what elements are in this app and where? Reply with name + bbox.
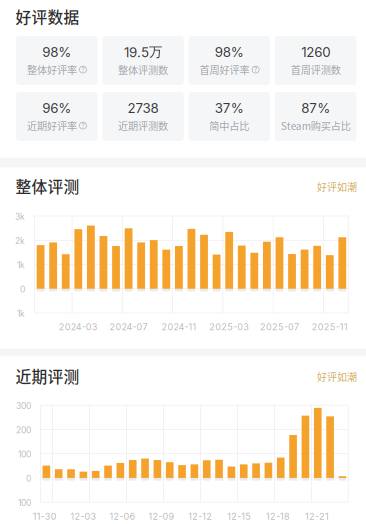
staticText: 2024-11: [161, 321, 196, 332]
button[interactable]: 37%: [189, 92, 270, 141]
staticText: 100: [18, 498, 31, 508]
staticText: 100: [18, 449, 31, 459]
staticText: 12-09: [148, 511, 174, 522]
staticText: 2025-11: [312, 321, 348, 332]
staticText: 1260: [301, 44, 330, 60]
staticText: 2025-07: [260, 321, 299, 332]
staticText: 12-15: [227, 511, 251, 522]
staticText: 首周评测数: [291, 62, 341, 77]
staticText: 2025-03: [209, 321, 249, 332]
staticText: 2024-07: [110, 321, 148, 332]
button[interactable]: 好评如潮: [317, 369, 357, 384]
staticText: 简中占比: [209, 118, 249, 133]
staticText: 1k: [17, 260, 25, 270]
staticText: 整体评测: [15, 174, 79, 197]
staticText: Steam购买占比: [281, 118, 351, 133]
button[interactable]: 96%: [16, 92, 97, 141]
staticText: 12-21: [305, 511, 329, 522]
staticText: ?: [81, 122, 84, 129]
staticText: 12-03: [71, 511, 97, 522]
button[interactable]: 1260: [275, 36, 356, 85]
staticText: 12-18: [266, 511, 290, 522]
staticText: 好评如潮: [317, 369, 357, 384]
staticText: 近期评测数: [118, 118, 168, 133]
staticText: 87%: [301, 100, 330, 116]
staticText: 2024-03: [59, 321, 98, 332]
button[interactable]: 19.5万: [102, 36, 184, 85]
staticText: 好评数据: [15, 5, 79, 28]
button[interactable]: 98%: [189, 36, 270, 85]
staticText: ?: [81, 66, 84, 73]
staticText: 1k: [17, 308, 25, 319]
staticText: 200: [16, 425, 31, 435]
staticText: 好评如潮: [317, 179, 357, 194]
button[interactable]: 98%: [16, 36, 97, 85]
staticText: 0: [20, 284, 25, 294]
staticText: 近期好评率: [27, 118, 77, 133]
button[interactable]: 87%: [275, 92, 356, 141]
button[interactable]: 2738: [102, 92, 184, 141]
staticText: 2k: [15, 236, 25, 246]
staticText: 首周好评率: [200, 62, 250, 77]
staticText: 96%: [42, 100, 71, 116]
staticText: 2738: [127, 100, 158, 116]
staticText: 12-06: [109, 511, 135, 522]
staticText: 19.5万: [124, 44, 162, 61]
staticText: 近期评测: [15, 364, 79, 387]
button[interactable]: 好评如潮: [317, 179, 357, 194]
staticText: 12-12: [188, 511, 212, 522]
staticText: 0: [26, 473, 31, 484]
staticText: 98%: [215, 44, 244, 60]
staticText: 98%: [42, 44, 71, 60]
staticText: 300: [16, 401, 31, 411]
staticText: 11-30: [33, 511, 57, 522]
staticText: 整体好评率: [27, 62, 77, 77]
staticText: ?: [254, 66, 257, 73]
staticText: 37%: [215, 100, 244, 116]
staticText: 整体评测数: [118, 63, 168, 77]
staticText: 3k: [15, 211, 25, 222]
